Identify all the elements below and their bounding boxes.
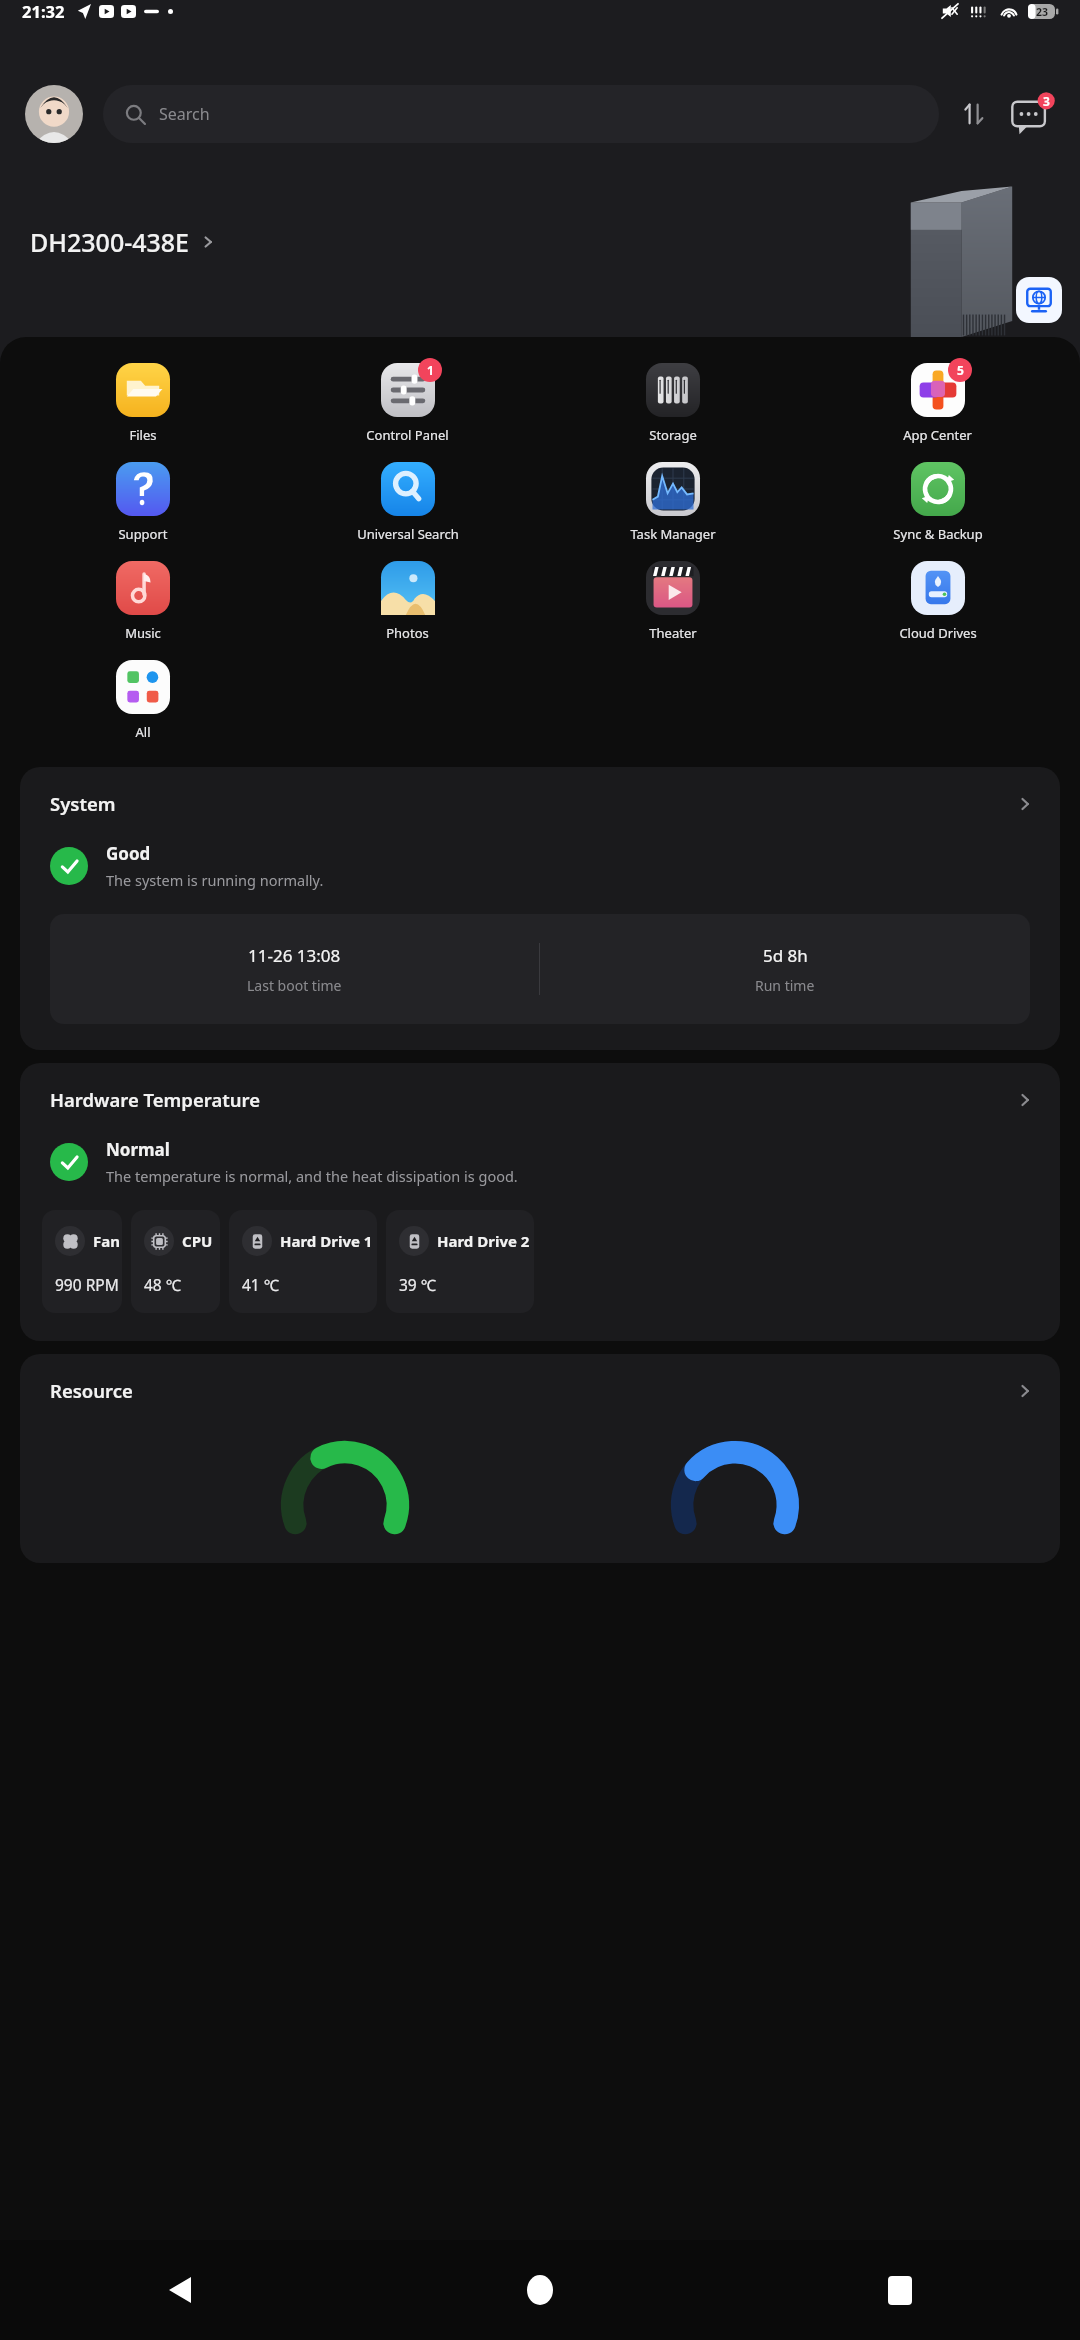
staticText: Resource — [50, 1378, 133, 1403]
staticText: Files — [129, 426, 157, 444]
staticText: Sync & Backup — [893, 525, 983, 543]
button[interactable]: Hard Drive 2 — [386, 1210, 534, 1313]
button[interactable]: Theater — [540, 557, 805, 646]
button[interactable]: Files — [10, 359, 275, 448]
button[interactable]: System — [20, 767, 1060, 820]
staticText: CPU — [182, 1231, 213, 1251]
button[interactable]: 1 — [275, 359, 540, 448]
button[interactable]: 5 — [805, 359, 1070, 448]
staticText: 1 — [427, 362, 434, 378]
staticText: Theater — [649, 624, 697, 642]
staticText: App Center — [903, 426, 972, 444]
button[interactable]: Transfer — [957, 97, 991, 131]
button[interactable]: Support — [10, 458, 275, 547]
button[interactable]: Fan — [42, 1210, 122, 1313]
button[interactable]: Sync & Backup — [805, 458, 1070, 547]
staticText: DH2300-438E — [30, 225, 190, 259]
button[interactable]: Universal Search — [275, 458, 540, 547]
button[interactable]: CPU — [131, 1210, 220, 1313]
button[interactable]: Home — [360, 2240, 720, 2340]
staticText: Hard Drive 1 — [280, 1231, 373, 1251]
staticText: Universal Search — [357, 525, 459, 543]
staticText: 23 — [1036, 5, 1049, 19]
staticText: 21:32 — [22, 0, 65, 22]
staticText: Storage — [649, 426, 697, 444]
staticText: 3 — [1043, 93, 1050, 109]
staticText: Run time — [755, 976, 815, 995]
staticText: The temperature is normal, and the heat … — [106, 1166, 518, 1186]
button[interactable]: Back — [0, 2240, 360, 2340]
staticText: Fan — [93, 1231, 120, 1251]
button[interactable]: Network — [1016, 277, 1062, 323]
button[interactable]: System — [20, 767, 1060, 1050]
staticText: Hardware Temperature — [50, 1087, 261, 1112]
staticText: Good — [106, 842, 151, 865]
staticText: Cloud Drives — [899, 624, 977, 642]
button[interactable]: Hard Drive 1 — [229, 1210, 377, 1313]
staticText: Music — [125, 624, 161, 642]
button[interactable]: Resource — [20, 1354, 1060, 1563]
staticText: Last boot time — [247, 976, 342, 995]
button[interactable]: Task Manager — [540, 458, 805, 547]
button[interactable]: Photos — [275, 557, 540, 646]
button[interactable]: Music — [10, 557, 275, 646]
button[interactable]: Storage — [540, 359, 805, 448]
staticText: Normal — [106, 1138, 170, 1161]
staticText: Photos — [386, 624, 429, 642]
button[interactable]: Hardware Temperature — [20, 1063, 1060, 1116]
button[interactable]: All — [10, 656, 275, 745]
button[interactable]: Messages — [1011, 92, 1055, 136]
button[interactable]: Cloud Drives — [805, 557, 1070, 646]
staticText: 39 ℃ — [399, 1274, 437, 1295]
button[interactable]: DH2300-438E — [30, 225, 216, 259]
staticText: System — [50, 791, 116, 816]
staticText: 48 ℃ — [144, 1274, 182, 1295]
staticText: Hard Drive 2 — [437, 1231, 530, 1251]
button[interactable]: Resource — [20, 1354, 1060, 1407]
staticText: The system is running normally. — [106, 870, 324, 890]
staticText: All — [135, 723, 151, 741]
staticText: 11-26 13:08 — [248, 944, 341, 967]
button[interactable]: Search — [103, 85, 939, 143]
staticText: 5d 8h — [763, 944, 808, 967]
staticText: 5 — [957, 362, 964, 378]
button[interactable]: Hardware Temperature — [20, 1063, 1060, 1341]
staticText: Task Manager — [630, 525, 716, 543]
staticText: 41 ℃ — [242, 1274, 280, 1295]
staticText: Support — [118, 525, 168, 543]
button[interactable]: Profile — [25, 85, 83, 143]
staticText: 990 RPM — [55, 1274, 119, 1295]
staticText: Control Panel — [366, 426, 449, 444]
staticText: Search — [159, 103, 210, 125]
button[interactable]: Recents — [720, 2240, 1080, 2340]
